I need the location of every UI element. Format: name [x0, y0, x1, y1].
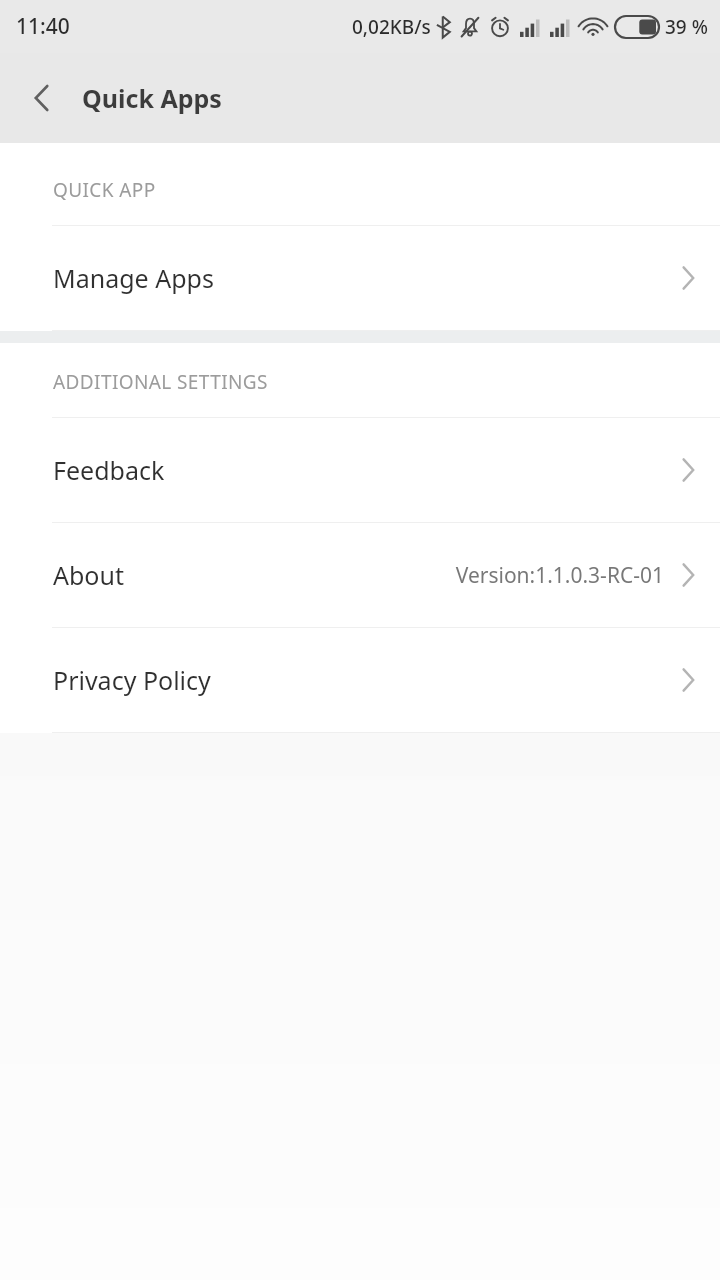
button[interactable]: Manage Apps: [0, 226, 720, 330]
button[interactable]: Feedback: [0, 418, 720, 522]
staticText: About: [53, 558, 124, 592]
staticText: QUICK APP: [53, 177, 156, 203]
staticText: Privacy Policy: [53, 663, 211, 697]
staticText: 11:40: [16, 12, 70, 41]
staticText: 39 %: [665, 14, 708, 40]
staticText: Manage Apps: [53, 261, 214, 295]
staticText: Feedback: [53, 453, 165, 487]
staticText: ADDITIONAL SETTINGS: [53, 369, 268, 395]
staticText: Quick Apps: [82, 81, 222, 115]
button[interactable]: Privacy Policy: [0, 628, 720, 732]
button[interactable]: About: [0, 523, 720, 627]
staticText: 0,02KB/s: [352, 14, 431, 40]
button[interactable]: Back: [12, 68, 72, 128]
staticText: Version:1.1.0.3-RC-01: [455, 561, 664, 590]
